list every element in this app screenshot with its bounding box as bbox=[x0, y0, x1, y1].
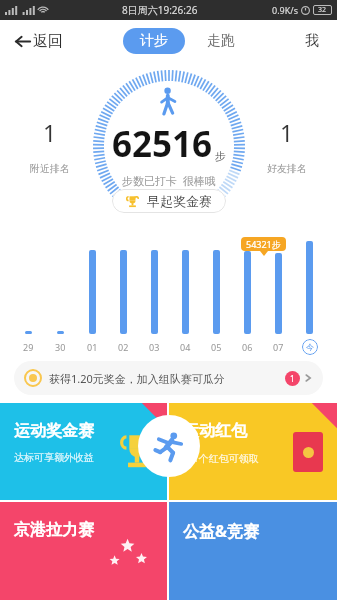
staticText: 06 bbox=[242, 341, 253, 353]
staticText: 0.9K/s bbox=[272, 4, 298, 16]
button[interactable] bbox=[213, 250, 220, 334]
button[interactable]: Today bbox=[302, 339, 318, 355]
staticText: 1 bbox=[43, 117, 57, 148]
button[interactable] bbox=[120, 250, 127, 334]
button[interactable]: 获得1.20元奖金，加入组队赛可瓜分 bbox=[14, 361, 323, 395]
staticText: 运动奖金赛 bbox=[14, 421, 94, 441]
staticText: 京港拉力赛 bbox=[14, 520, 94, 540]
staticText: 02 bbox=[118, 341, 129, 353]
button[interactable]: 早起奖金赛 bbox=[112, 189, 226, 213]
staticText: 03 bbox=[149, 341, 160, 353]
staticText: 29 bbox=[23, 341, 34, 353]
staticText: 07 bbox=[273, 341, 284, 353]
staticText: 附近排名 bbox=[30, 162, 70, 175]
button[interactable]: 走跑 bbox=[201, 28, 241, 54]
staticText: 计步 bbox=[140, 32, 168, 50]
staticText: 05 bbox=[211, 341, 222, 353]
button[interactable]: Start running bbox=[138, 415, 200, 477]
staticText: 今 bbox=[306, 342, 314, 352]
staticText: 54321步 bbox=[246, 238, 281, 250]
button[interactable] bbox=[57, 331, 64, 334]
staticText: 早起奖金赛 bbox=[147, 193, 212, 209]
staticText: 运动红包 bbox=[183, 421, 247, 441]
button[interactable]: 运动奖金赛 bbox=[0, 403, 167, 500]
staticText: 30 bbox=[55, 341, 66, 353]
staticText: 好友排名 bbox=[267, 162, 307, 175]
staticText: 达标可享额外收益 bbox=[14, 451, 94, 464]
staticText: 32 bbox=[318, 5, 327, 15]
staticText: 走跑 bbox=[207, 32, 235, 50]
staticText: 我 bbox=[305, 32, 319, 50]
button[interactable]: 公益&竞赛 bbox=[169, 502, 337, 600]
button[interactable]: 京港拉力赛 bbox=[0, 502, 167, 600]
button[interactable]: 计步 bbox=[123, 28, 185, 54]
button[interactable] bbox=[275, 253, 282, 334]
staticText: 1 bbox=[280, 117, 294, 148]
staticText: 62516 bbox=[112, 120, 213, 168]
button[interactable] bbox=[25, 331, 32, 334]
staticText: 8日周六19:26:26 bbox=[122, 3, 198, 17]
staticText: 有1个红包可领取 bbox=[183, 451, 259, 465]
button[interactable]: 我 bbox=[297, 28, 327, 54]
staticText: 01 bbox=[87, 341, 98, 353]
button[interactable]: 运动红包 bbox=[169, 403, 337, 500]
staticText: 1 bbox=[290, 373, 295, 384]
button[interactable] bbox=[244, 251, 251, 334]
staticText: 步数已打卡 很棒哦 bbox=[122, 173, 216, 188]
staticText: 获得1.20元奖金，加入组队赛可瓜分 bbox=[49, 371, 225, 386]
staticText: 04 bbox=[180, 341, 191, 353]
staticText: 返回 bbox=[33, 32, 63, 51]
button[interactable]: 返回 bbox=[10, 28, 67, 55]
button[interactable] bbox=[182, 250, 189, 334]
button[interactable] bbox=[89, 250, 96, 334]
button[interactable] bbox=[151, 250, 158, 334]
staticText: 步 bbox=[215, 149, 226, 163]
staticText: 公益&竞赛 bbox=[183, 520, 260, 542]
button[interactable] bbox=[306, 241, 313, 334]
